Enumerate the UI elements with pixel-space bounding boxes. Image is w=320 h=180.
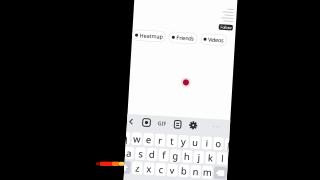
button[interactable]: u: [193, 135, 203, 148]
staticText: Videos: [205, 34, 221, 41]
staticText: m: [208, 164, 217, 177]
staticText: b: [186, 164, 192, 177]
button[interactable]: w: [135, 135, 145, 148]
staticText: w: [136, 135, 143, 147]
button[interactable]: Stickers: [144, 119, 153, 130]
button[interactable]: Delete: [219, 164, 231, 177]
button[interactable]: Heatmap: [129, 32, 162, 43]
button[interactable]: Settings: [191, 119, 200, 130]
staticText: d: [153, 150, 159, 162]
staticText: s: [142, 150, 146, 162]
button[interactable]: b: [184, 164, 194, 177]
staticText: a: [130, 150, 135, 162]
button[interactable]: v: [172, 164, 182, 177]
staticText: o: [219, 135, 225, 147]
button[interactable]: q: [123, 135, 133, 148]
staticText: g: [176, 150, 182, 162]
button[interactable]: Shift: [123, 164, 135, 177]
button[interactable]: h: [186, 150, 196, 162]
staticText: z: [140, 164, 144, 177]
staticText: t: [173, 135, 176, 147]
staticText: u: [195, 135, 201, 147]
staticText: Heatmap: [136, 34, 159, 41]
button[interactable]: k: [209, 150, 219, 162]
button[interactable]: More: [213, 119, 224, 130]
button[interactable]: x: [149, 164, 159, 177]
staticText: q: [125, 135, 131, 147]
staticText: k: [212, 150, 217, 162]
button[interactable]: p: [228, 135, 238, 148]
button[interactable]: j: [198, 150, 208, 162]
button[interactable]: g: [174, 150, 184, 162]
staticText: e: [149, 135, 154, 147]
button[interactable]: e: [146, 135, 156, 148]
button[interactable]: r: [158, 135, 168, 148]
staticText: n: [197, 164, 203, 177]
staticText: f: [166, 150, 169, 162]
button[interactable]: a: [127, 150, 138, 162]
button[interactable]: GIF: [160, 119, 169, 130]
staticText: j: [202, 150, 204, 162]
staticText: GIF: [160, 121, 169, 128]
staticText: r: [161, 135, 165, 147]
button[interactable]: m: [207, 164, 217, 177]
staticText: Follow: [216, 22, 227, 27]
button[interactable]: f: [162, 150, 173, 162]
button[interactable]: z: [137, 164, 147, 177]
button[interactable]: t: [170, 135, 180, 148]
staticText: l: [225, 150, 227, 162]
button[interactable]: l: [221, 150, 231, 162]
button[interactable]: o: [216, 135, 227, 148]
button[interactable]: i: [205, 135, 215, 148]
button[interactable]: n: [195, 164, 206, 177]
button[interactable]: Friends: [166, 32, 194, 43]
button[interactable]: Videos: [198, 32, 224, 43]
staticText: v: [175, 164, 180, 177]
button[interactable]: Clipboard: [175, 119, 184, 130]
staticText: y: [184, 135, 189, 147]
staticText: i: [209, 135, 211, 147]
button[interactable]: y: [181, 135, 192, 148]
staticText: h: [188, 150, 194, 162]
button[interactable]: Follow: [215, 22, 229, 27]
button[interactable]: Back: [128, 119, 137, 130]
staticText: c: [163, 164, 167, 177]
staticText: Friends: [173, 34, 191, 41]
button[interactable]: c: [160, 164, 170, 177]
staticText: x: [151, 164, 156, 177]
button[interactable]: d: [151, 150, 161, 162]
button[interactable]: s: [139, 150, 149, 162]
